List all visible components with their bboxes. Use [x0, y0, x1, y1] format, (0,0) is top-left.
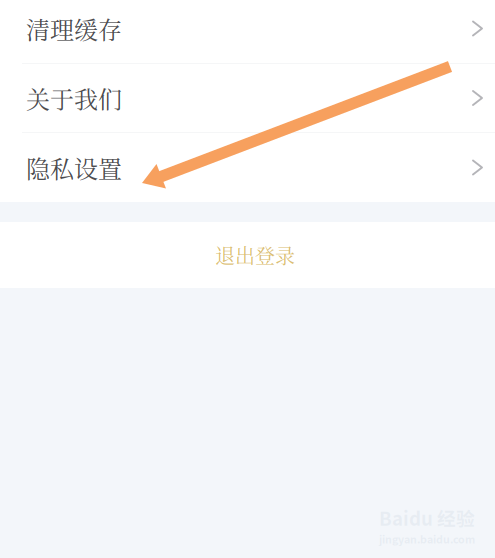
staticText: Baidu 经验: [379, 504, 475, 531]
button[interactable]: 隐私设置: [0, 133, 495, 202]
button[interactable]: 关于我们: [0, 64, 495, 132]
staticText: 清理缓存: [26, 11, 122, 46]
staticText: 退出登录: [215, 241, 295, 269]
staticText: jingyan.baidu.com: [379, 531, 475, 546]
button[interactable]: 清理缓存: [0, 0, 495, 63]
button[interactable]: 退出登录: [0, 222, 495, 288]
staticText: 关于我们: [26, 81, 122, 115]
staticText: 隐私设置: [26, 150, 122, 185]
